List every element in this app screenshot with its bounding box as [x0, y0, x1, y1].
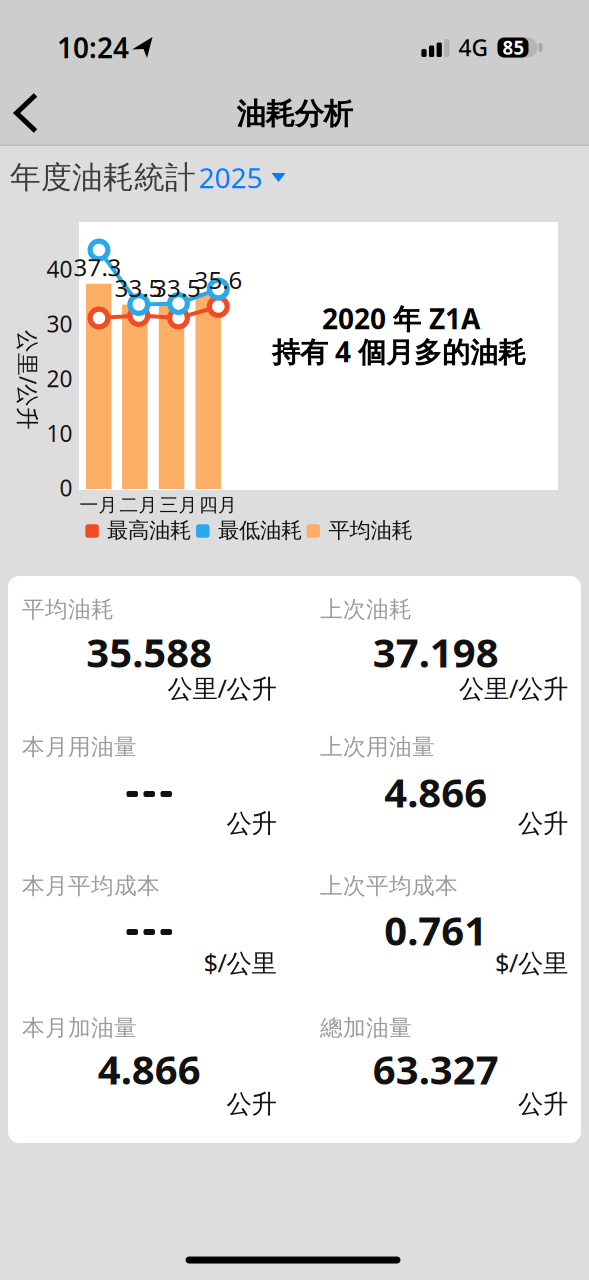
- staticText: 2020 年 Z1A: [322, 300, 480, 337]
- staticText: 公升: [226, 808, 276, 839]
- staticText: 油耗分析: [236, 96, 352, 132]
- staticText: 30: [46, 309, 72, 339]
- staticText: 最高油耗: [107, 517, 191, 544]
- staticText: 本月用油量: [22, 733, 137, 761]
- staticText: 公升: [518, 1088, 568, 1119]
- staticText: 平均油耗: [22, 596, 114, 623]
- staticText: 最低油耗: [218, 517, 302, 544]
- staticText: 四月: [199, 493, 237, 516]
- staticText: 35.6: [195, 264, 243, 296]
- staticText: 63.327: [373, 1042, 499, 1095]
- staticText: 4.866: [98, 1042, 201, 1095]
- staticText: 公里/公升: [459, 671, 568, 705]
- button[interactable]: 2025: [192, 155, 292, 199]
- staticText: 本月平均成本: [22, 872, 160, 900]
- staticText: 公升: [518, 808, 568, 839]
- staticText: 85: [502, 35, 524, 60]
- staticText: 一月: [79, 493, 117, 516]
- staticText: 本月加油量: [22, 1014, 137, 1042]
- staticText: 平均油耗: [328, 517, 412, 544]
- staticText: 公升: [226, 1088, 276, 1119]
- staticText: 37.198: [373, 625, 499, 678]
- staticText: 公里/公升: [0, 365, 78, 395]
- staticText: 2025: [198, 159, 262, 196]
- staticText: $/公里: [203, 946, 276, 979]
- staticText: 上次用油量: [320, 733, 435, 761]
- staticText: 40: [46, 254, 72, 284]
- staticText: 37.3: [73, 251, 121, 283]
- staticText: 上次平均成本: [320, 872, 458, 900]
- staticText: 4.866: [384, 765, 487, 818]
- staticText: 4G: [458, 32, 487, 62]
- staticText: 二月: [119, 493, 157, 516]
- staticText: 10: [46, 418, 72, 448]
- staticText: 公里/公升: [167, 671, 276, 705]
- button[interactable]: [9, 92, 49, 134]
- staticText: $/公里: [495, 946, 568, 979]
- staticText: 上次油耗: [320, 596, 412, 623]
- staticText: 三月: [159, 493, 197, 516]
- staticText: 年度油耗統計: [10, 159, 196, 196]
- staticText: 持有 4 個月多的油耗: [272, 333, 526, 370]
- staticText: 33.5: [114, 272, 162, 304]
- staticText: 總加油量: [320, 1014, 412, 1042]
- staticText: 33.5: [153, 272, 201, 304]
- staticText: 20: [46, 363, 72, 393]
- staticText: 0.761: [384, 903, 487, 956]
- staticText: 35.588: [86, 625, 212, 678]
- staticText: 10:24: [57, 29, 129, 66]
- staticText: 0: [59, 473, 72, 503]
